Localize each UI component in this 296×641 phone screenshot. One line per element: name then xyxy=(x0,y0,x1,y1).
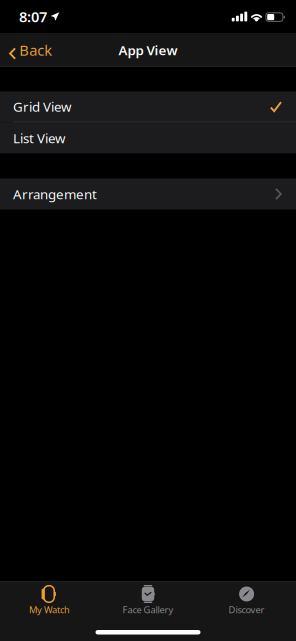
button[interactable]: Arrangement xyxy=(0,178,296,209)
staticText: Face Gallery xyxy=(122,603,173,616)
button[interactable]: Discover xyxy=(197,584,296,617)
staticText: Discover xyxy=(229,603,265,616)
staticText: Grid View xyxy=(13,98,71,115)
staticText: My Watch xyxy=(29,603,70,616)
button[interactable]: Face Gallery xyxy=(99,584,197,617)
staticText: 8:07 xyxy=(19,7,47,26)
button[interactable]: My Watch xyxy=(0,584,99,617)
staticText: App View xyxy=(118,41,177,59)
staticText: List View xyxy=(13,129,65,147)
button[interactable]: List View xyxy=(0,122,296,153)
button[interactable]: Back xyxy=(0,33,60,67)
staticText: Back xyxy=(19,40,52,60)
staticText: Arrangement xyxy=(13,185,97,203)
button[interactable]: Grid View xyxy=(0,91,296,122)
